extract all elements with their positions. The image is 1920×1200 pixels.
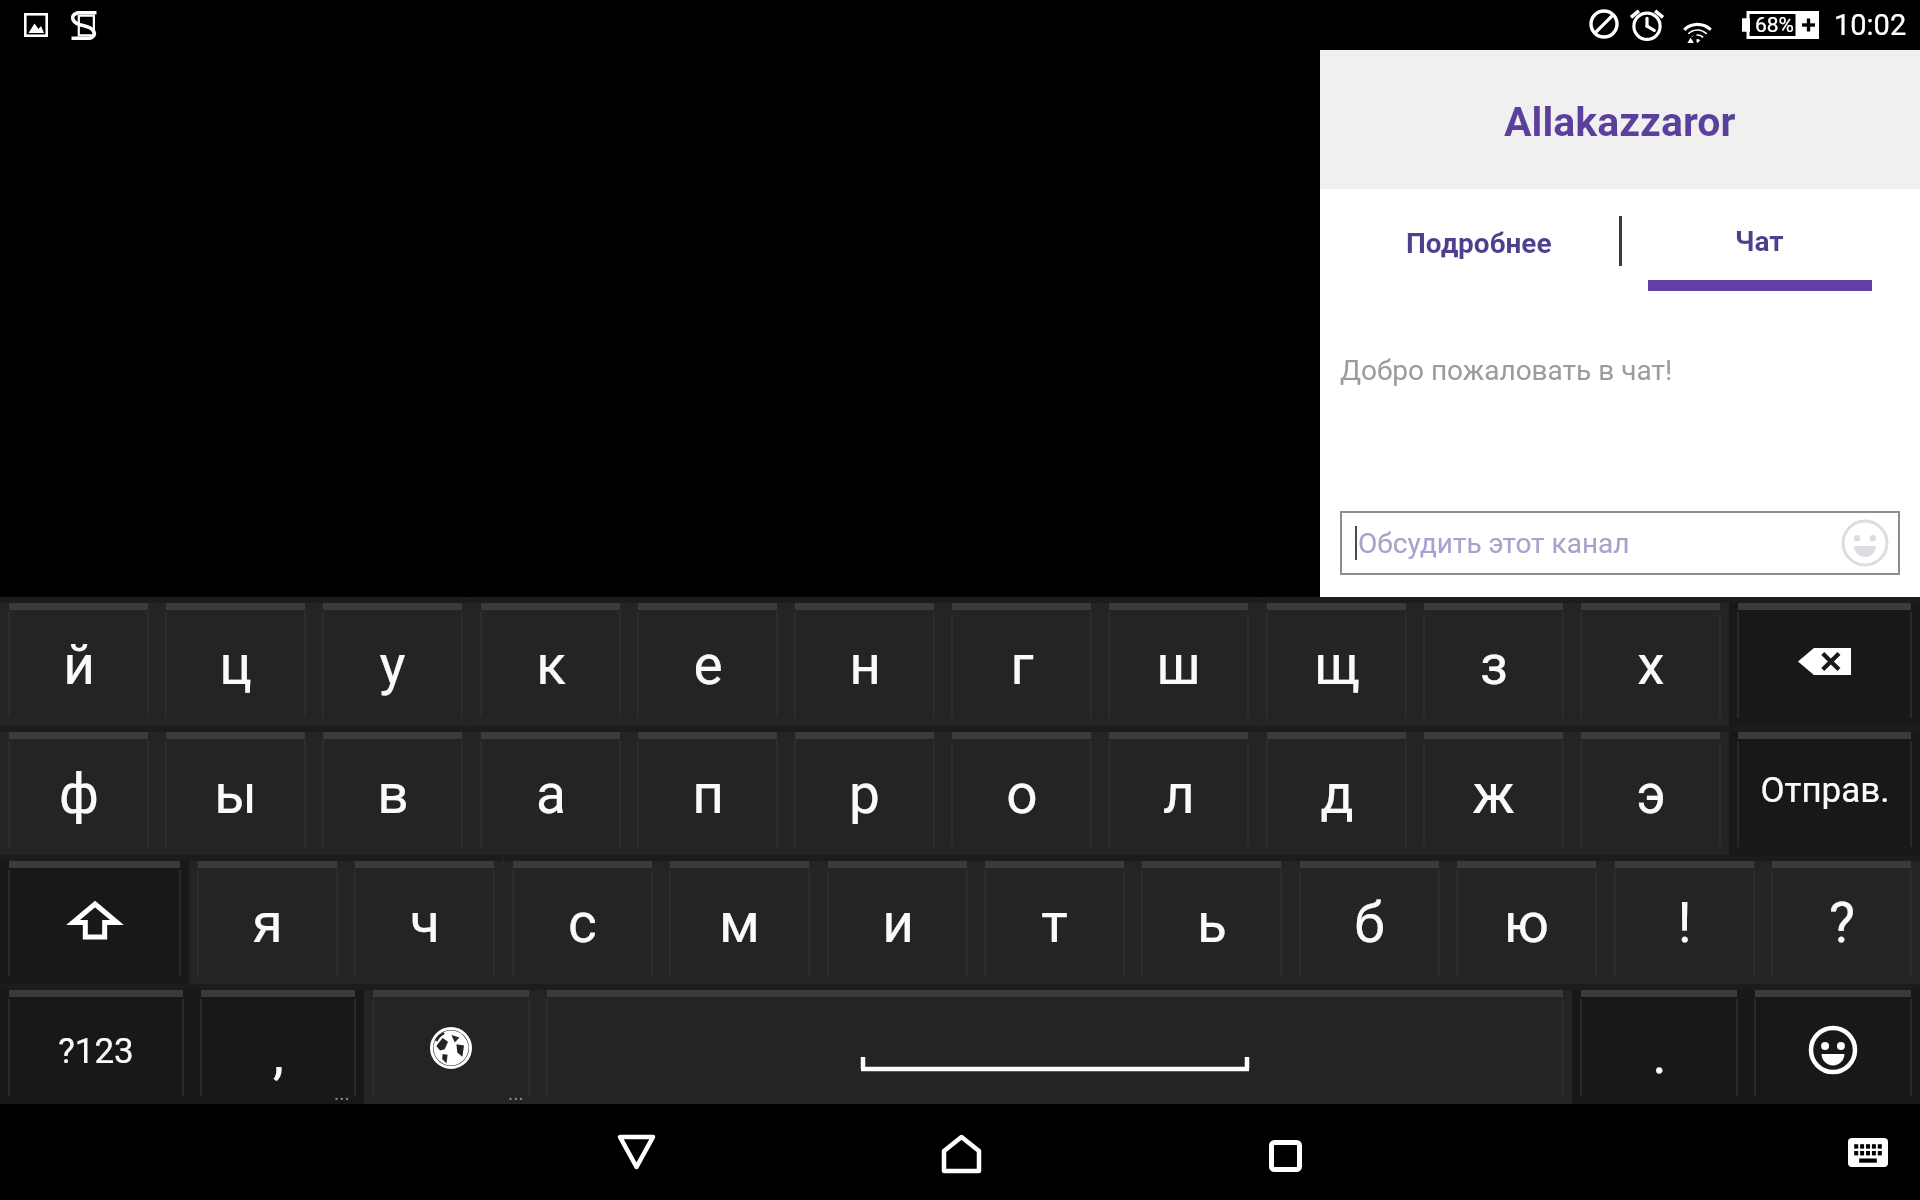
button[interactable]: т bbox=[976, 855, 1133, 984]
staticText: л bbox=[1163, 762, 1195, 826]
staticText: Обсудить этот канал bbox=[1358, 527, 1630, 560]
button[interactable]: Recent apps bbox=[1237, 1104, 1333, 1200]
staticText: , bbox=[273, 1022, 284, 1086]
button[interactable]: г bbox=[943, 597, 1100, 726]
button[interactable]: м bbox=[661, 855, 818, 984]
button[interactable]: ю bbox=[1448, 855, 1605, 984]
other: Screenshot notification bbox=[24, 13, 48, 37]
staticText: ш bbox=[1156, 633, 1201, 697]
staticText: ? bbox=[1829, 891, 1855, 955]
button[interactable]: с bbox=[504, 855, 661, 984]
button[interactable]: ц bbox=[157, 597, 314, 726]
staticText: я bbox=[252, 891, 283, 955]
staticText: у bbox=[379, 633, 406, 697]
button[interactable]: л bbox=[1100, 726, 1257, 855]
staticText: ... bbox=[508, 1081, 524, 1104]
staticText: ! bbox=[1677, 891, 1692, 955]
staticText: с bbox=[568, 891, 597, 955]
staticText: х bbox=[1637, 633, 1665, 697]
button[interactable]: Shift bbox=[0, 855, 189, 984]
button[interactable]: Backspace bbox=[1729, 597, 1920, 726]
button[interactable]: а bbox=[472, 726, 629, 855]
staticText: м bbox=[719, 891, 760, 955]
staticText: ц bbox=[219, 633, 252, 697]
button[interactable]: Подробнее bbox=[1328, 189, 1620, 341]
staticText: Allakazzaror bbox=[1504, 98, 1736, 146]
staticText: о bbox=[1006, 762, 1038, 826]
button[interactable]: Emoji bbox=[1746, 984, 1920, 1104]
staticText: Подробнее bbox=[1406, 227, 1552, 260]
button[interactable]: у bbox=[314, 597, 471, 726]
staticText: ю bbox=[1504, 891, 1549, 955]
staticText: й bbox=[63, 633, 95, 697]
staticText: щ bbox=[1314, 633, 1360, 697]
button[interactable]: п bbox=[629, 726, 786, 855]
button[interactable]: д bbox=[1258, 726, 1415, 855]
staticText: 10:02 bbox=[1834, 8, 1907, 42]
button[interactable]: ы bbox=[157, 726, 314, 855]
staticText: Чат bbox=[1735, 225, 1784, 258]
button[interactable]: ч bbox=[346, 855, 503, 984]
button[interactable]: я bbox=[189, 855, 346, 984]
staticText: ?123 bbox=[58, 1031, 134, 1072]
button[interactable]: б bbox=[1291, 855, 1448, 984]
button[interactable]: Switch keyboard language bbox=[364, 984, 538, 1104]
button[interactable]: х bbox=[1572, 597, 1729, 726]
button[interactable]: ? bbox=[1763, 855, 1920, 984]
button[interactable]: ь bbox=[1133, 855, 1290, 984]
button[interactable]: Show keyboard bbox=[1820, 1104, 1916, 1200]
staticText: п bbox=[692, 762, 724, 826]
button[interactable]: р bbox=[786, 726, 943, 855]
staticText: ы bbox=[214, 762, 257, 826]
button[interactable]: й bbox=[0, 597, 157, 726]
staticText: и bbox=[882, 891, 914, 955]
staticText: в bbox=[377, 762, 409, 826]
button[interactable]: ?123 bbox=[0, 984, 192, 1104]
other: App notification bbox=[71, 11, 97, 40]
button[interactable]: Обсудить этот канал bbox=[1340, 511, 1900, 575]
button[interactable]: ! bbox=[1606, 855, 1763, 984]
staticText: Отправ. bbox=[1760, 770, 1890, 811]
staticText: з bbox=[1480, 633, 1508, 697]
button[interactable]: ф bbox=[0, 726, 157, 855]
staticText: е bbox=[693, 633, 723, 697]
staticText: ... bbox=[334, 1081, 350, 1104]
button[interactable]: в bbox=[314, 726, 471, 855]
staticText: ж bbox=[1472, 762, 1515, 826]
staticText: 68% bbox=[1755, 13, 1794, 38]
staticText: р bbox=[849, 762, 880, 826]
button[interactable]: з bbox=[1415, 597, 1572, 726]
other: Insert emoji bbox=[1841, 519, 1889, 567]
button[interactable]: , bbox=[192, 984, 364, 1104]
staticText: б bbox=[1354, 891, 1385, 955]
button[interactable]: щ bbox=[1258, 597, 1415, 726]
button[interactable]: Отправ. bbox=[1729, 726, 1920, 855]
staticText: . bbox=[1652, 1022, 1667, 1086]
button[interactable]: к bbox=[472, 597, 629, 726]
button[interactable]: о bbox=[943, 726, 1100, 855]
staticText: т bbox=[1041, 891, 1068, 955]
staticText: э bbox=[1636, 762, 1666, 826]
staticText: Добро пожаловать в чат! bbox=[1340, 354, 1673, 387]
button[interactable]: Back bbox=[588, 1104, 684, 1200]
staticText: к bbox=[536, 633, 566, 697]
button[interactable]: Space bbox=[538, 984, 1572, 1104]
staticText: а bbox=[536, 762, 566, 826]
staticText: д bbox=[1320, 762, 1354, 826]
button[interactable]: ш bbox=[1100, 597, 1257, 726]
staticText: ф bbox=[59, 762, 99, 826]
button[interactable]: и bbox=[819, 855, 976, 984]
button[interactable]: Home bbox=[913, 1104, 1009, 1200]
staticText: н bbox=[849, 633, 881, 697]
button[interactable]: . bbox=[1572, 984, 1746, 1104]
button[interactable]: э bbox=[1572, 726, 1729, 855]
button[interactable]: ж bbox=[1415, 726, 1572, 855]
staticText: г bbox=[1010, 633, 1034, 697]
button[interactable]: Чат bbox=[1620, 189, 1912, 341]
button[interactable]: е bbox=[629, 597, 786, 726]
staticText: ч bbox=[410, 891, 440, 955]
staticText: ь bbox=[1197, 891, 1227, 955]
button[interactable]: н bbox=[786, 597, 943, 726]
